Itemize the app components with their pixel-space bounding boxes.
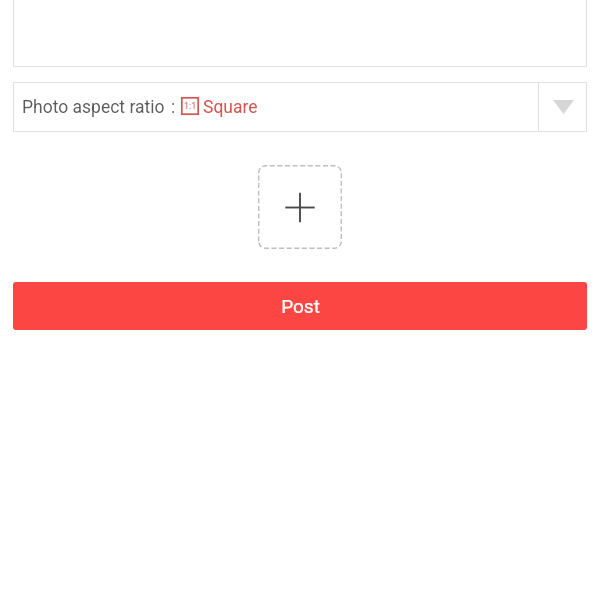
- staticText: 1:1: [184, 101, 197, 112]
- button[interactable]: Post: [13, 282, 587, 330]
- staticText: Square: [203, 97, 258, 118]
- button[interactable]: Choose aspect ratio: [539, 82, 587, 132]
- staticText: Post: [281, 295, 320, 317]
- button[interactable]: Caption: [13, 0, 587, 67]
- staticText: Photo aspect ratio: [22, 97, 165, 118]
- button[interactable]: Photo aspect ratio: [13, 82, 538, 132]
- staticText: :: [171, 97, 176, 118]
- button[interactable]: Add photo: [258, 165, 342, 249]
